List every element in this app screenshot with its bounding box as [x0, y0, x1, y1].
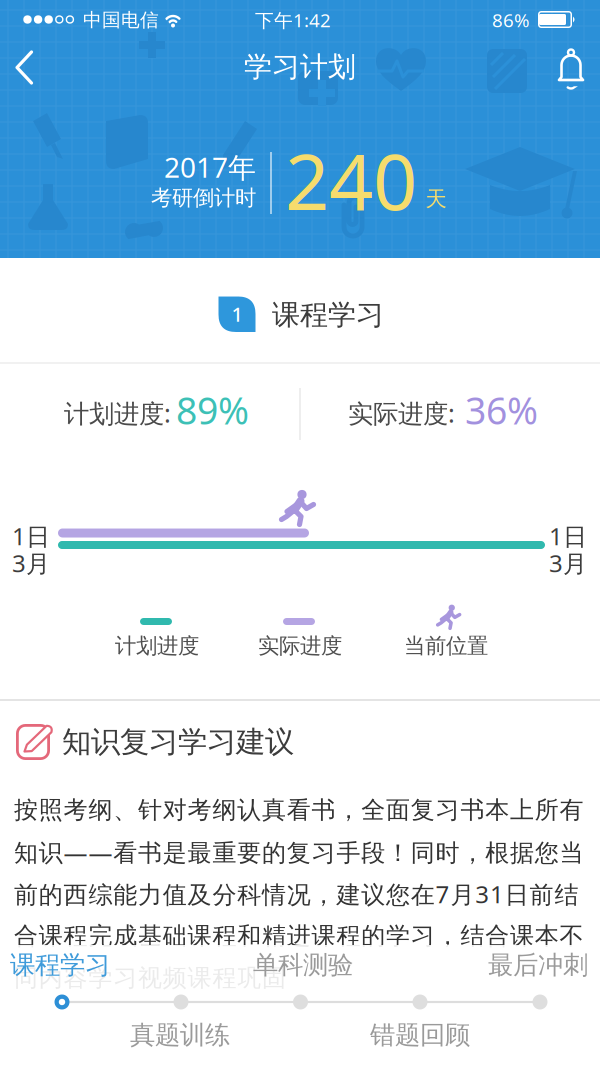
button[interactable]: Notifications	[549, 45, 593, 89]
staticText: 单科测验	[253, 949, 353, 980]
button[interactable]: 错题回顾	[360, 1017, 480, 1053]
staticText: 合课程完成基础课程和精进课程的学习，结合课本不	[14, 921, 584, 951]
staticText: 错题回顾	[370, 1019, 470, 1050]
staticText: 学习计划	[244, 50, 356, 84]
staticText: 1	[231, 301, 242, 327]
staticText: 计划进度	[115, 633, 199, 659]
staticText: 考研倒计时	[151, 185, 256, 211]
button[interactable]: 真题训练	[120, 1017, 240, 1053]
button[interactable]: 最后冲刺	[468, 947, 588, 983]
button[interactable]: 单科测验	[243, 947, 363, 983]
staticText: 实际进度:	[348, 396, 455, 430]
staticText: 前的西综能力值及分科情况，建议您在7月31日前结	[14, 878, 578, 910]
staticText: 计划进度:	[64, 396, 171, 430]
staticText: 实际进度	[258, 633, 342, 659]
staticText: 86%	[492, 8, 530, 32]
staticText: 中国电信	[83, 8, 159, 31]
staticText: 天	[425, 186, 446, 212]
staticText: 按照考纲、针对考纲认真看书，全面复习书本上所有	[14, 795, 584, 825]
button[interactable]: Back	[2, 45, 46, 89]
staticText: 89%	[176, 385, 249, 435]
staticText: 知识——看书是最重要的复习手段！同时，根据您当	[14, 836, 584, 868]
staticText: 最后冲刺	[488, 949, 588, 980]
staticText: 知识复习学习建议	[62, 724, 294, 760]
staticText: 真题训练	[130, 1019, 230, 1050]
staticText: 3月	[549, 547, 587, 579]
staticText: 3月	[12, 547, 50, 579]
staticText: 1日	[549, 520, 587, 552]
staticText: 1日	[12, 520, 50, 552]
staticText: 240	[285, 129, 417, 231]
staticText: 当前位置	[404, 633, 488, 659]
staticText: 同内容学习视频课程巩固	[14, 963, 286, 993]
staticText: 2017年	[164, 148, 256, 186]
staticText: 课程学习	[272, 298, 384, 332]
button[interactable]: 课程学习	[10, 947, 130, 983]
staticText: 下午1:42	[255, 8, 331, 32]
staticText: 课程学习	[10, 949, 110, 980]
staticText: 36%	[465, 385, 538, 435]
